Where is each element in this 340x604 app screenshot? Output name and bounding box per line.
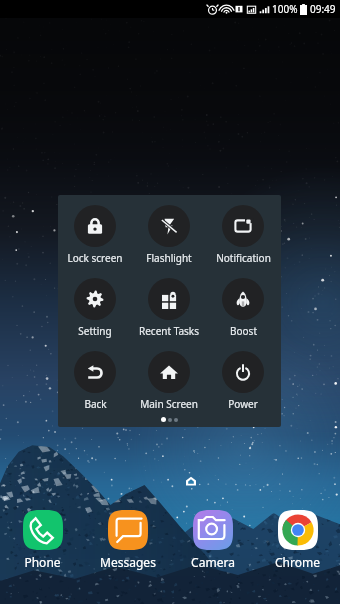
staticText: Flashlight (146, 251, 192, 265)
button[interactable]: Messages (85, 510, 170, 570)
other: Home page (186, 476, 196, 486)
button[interactable]: Power (206, 341, 280, 414)
button[interactable]: Back (58, 341, 132, 414)
staticText: Setting (78, 324, 112, 338)
staticText: Lock screen (67, 251, 123, 265)
staticText: 100% (272, 2, 298, 16)
staticText: Back (84, 397, 107, 411)
staticText: Notification (216, 251, 271, 265)
button[interactable]: Flashlight (132, 195, 206, 268)
staticText: 09:49 (310, 2, 336, 16)
staticText: Messages (100, 554, 156, 570)
button[interactable]: Notification (206, 195, 280, 268)
button[interactable]: Recent Tasks (132, 268, 206, 341)
staticText: Camera (191, 554, 235, 570)
button[interactable]: Camera (170, 510, 255, 570)
button[interactable]: Lock screen (58, 195, 132, 268)
staticText: Chrome (275, 554, 320, 570)
button[interactable]: Chrome (255, 510, 340, 570)
button[interactable]: Setting (58, 268, 132, 341)
button[interactable]: Boost (206, 268, 280, 341)
staticText: Main Screen (140, 397, 198, 411)
button[interactable]: Main Screen (132, 341, 206, 414)
staticText: Recent Tasks (139, 324, 199, 338)
button[interactable]: Phone (0, 510, 85, 570)
staticText: Boost (230, 324, 257, 338)
staticText: Power (228, 397, 258, 411)
staticText: Phone (24, 554, 61, 570)
